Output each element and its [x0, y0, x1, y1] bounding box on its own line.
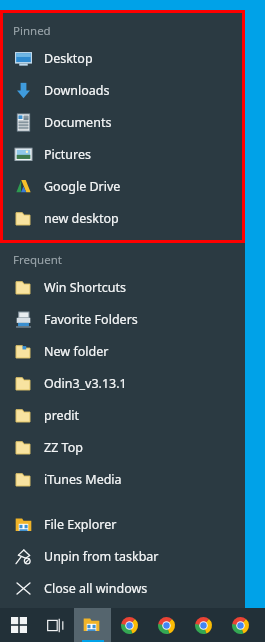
button[interactable]: ZZ Top [0, 431, 245, 463]
staticText: Win Shortcuts [44, 279, 126, 296]
staticText: File Explorer [44, 516, 117, 533]
staticText: Pictures [44, 146, 91, 163]
button[interactable]: Unpin from taskbar [0, 540, 245, 572]
staticText: Pinned [13, 23, 51, 39]
staticText: Desktop [44, 50, 93, 67]
staticText: Favorite Folders [44, 311, 138, 328]
staticText: predit [44, 407, 80, 424]
button[interactable]: Google Chrome [111, 608, 148, 642]
button[interactable]: Documents [0, 106, 245, 138]
button[interactable]: Downloads [0, 74, 245, 106]
button[interactable]: Task View [37, 608, 74, 642]
button[interactable]: Win Shortcuts [0, 271, 245, 303]
staticText: iTunes Media [44, 471, 122, 488]
staticText: Close all windows [44, 580, 148, 597]
other: Unpin from taskbar [15, 548, 32, 565]
button[interactable]: File Explorer [0, 508, 245, 540]
button[interactable]: New folder [0, 335, 245, 367]
button[interactable]: Pictures [0, 138, 245, 170]
button[interactable]: Favorite Folders [0, 303, 245, 335]
button[interactable]: Google Chrome [185, 608, 222, 642]
button[interactable]: predit [0, 399, 245, 431]
staticText: Frequent [13, 252, 62, 268]
staticText: Documents [44, 114, 112, 131]
staticText: ZZ Top [44, 439, 83, 456]
button[interactable]: Google Drive [0, 170, 245, 202]
staticText: New folder [44, 343, 109, 360]
button[interactable]: Odin3_v3.13.1 [0, 367, 245, 399]
button[interactable]: new desktop [0, 202, 245, 234]
button[interactable]: iTunes Media [0, 463, 245, 495]
other: Close all windows [15, 580, 32, 597]
button[interactable]: Start [0, 608, 37, 642]
staticText: Unpin from taskbar [44, 548, 159, 565]
staticText: Odin3_v3.13.1 [44, 375, 127, 392]
button[interactable]: File Explorer [74, 608, 111, 642]
staticText: Downloads [44, 82, 110, 99]
button[interactable]: Google Chrome [222, 608, 259, 642]
button[interactable]: Desktop [0, 42, 245, 74]
button[interactable]: Close all windows [0, 572, 245, 604]
staticText: new desktop [44, 210, 119, 227]
button[interactable]: Google Chrome [148, 608, 185, 642]
staticText: Google Drive [44, 178, 121, 195]
